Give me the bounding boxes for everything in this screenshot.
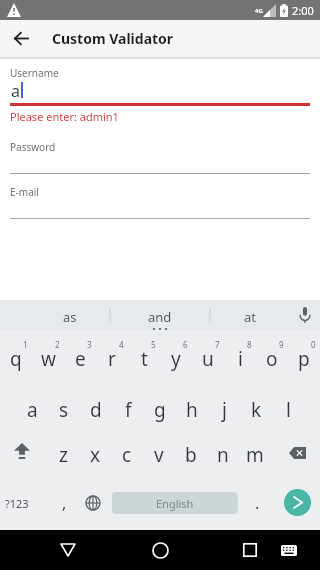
staticText: q xyxy=(10,346,22,372)
button[interactable]: f xyxy=(112,393,144,427)
button[interactable]: x xyxy=(79,438,111,472)
button[interactable] xyxy=(284,489,311,516)
staticText: Please enter: admin1 xyxy=(10,109,119,124)
button[interactable]: r xyxy=(96,342,128,376)
button[interactable]: d xyxy=(80,393,112,427)
staticText: a xyxy=(27,397,38,423)
staticText: e xyxy=(75,346,86,372)
button[interactable]: v xyxy=(143,438,175,472)
staticText: s xyxy=(59,397,69,423)
staticText: 0 xyxy=(311,339,316,350)
staticText: Custom Validator xyxy=(52,29,174,48)
button[interactable]: h xyxy=(176,393,208,427)
staticText: g xyxy=(154,397,166,423)
button[interactable]: k xyxy=(240,393,272,427)
button[interactable]: c xyxy=(111,438,143,472)
button[interactable] xyxy=(276,537,302,563)
button[interactable]: s xyxy=(48,393,80,427)
button[interactable] xyxy=(145,535,175,565)
staticText: x xyxy=(90,442,101,468)
staticText: 2 xyxy=(55,339,60,350)
staticText: and xyxy=(148,308,172,326)
button[interactable]: as xyxy=(30,308,110,326)
staticText: j xyxy=(222,397,227,423)
button[interactable]: a xyxy=(16,393,48,427)
button[interactable]: i xyxy=(224,342,256,376)
staticText: t xyxy=(141,346,148,372)
staticText: n xyxy=(217,442,229,468)
button[interactable]: u xyxy=(192,342,224,376)
staticText: . xyxy=(255,492,260,514)
button[interactable]: b xyxy=(175,438,207,472)
staticText: i xyxy=(238,346,243,372)
button[interactable] xyxy=(2,433,42,467)
button[interactable]: English xyxy=(112,492,238,514)
button[interactable] xyxy=(53,535,83,565)
staticText: 5 xyxy=(151,339,156,350)
button[interactable] xyxy=(79,486,107,520)
button[interactable]: m xyxy=(239,438,271,472)
staticText: as xyxy=(63,308,77,326)
button[interactable] xyxy=(235,535,265,565)
staticText: a xyxy=(11,80,20,100)
staticText: Username xyxy=(10,66,59,80)
staticText: k xyxy=(251,397,262,423)
button[interactable]: p xyxy=(288,342,320,376)
button[interactable]: w xyxy=(32,342,64,376)
button[interactable]: . xyxy=(241,486,273,520)
staticText: c xyxy=(122,442,132,468)
button[interactable]: t xyxy=(128,342,160,376)
button[interactable]: y xyxy=(160,342,192,376)
staticText: w xyxy=(41,346,56,372)
staticText: at xyxy=(244,308,256,326)
button[interactable]: q xyxy=(0,342,32,376)
staticText: 3 xyxy=(87,339,92,350)
staticText: 9 xyxy=(279,339,284,350)
staticText: r xyxy=(108,346,116,372)
button[interactable]: e xyxy=(64,342,96,376)
button[interactable]: , xyxy=(48,486,80,520)
staticText: m xyxy=(246,442,264,468)
staticText: o xyxy=(266,346,278,372)
button[interactable] xyxy=(3,20,40,57)
staticText: z xyxy=(59,442,68,468)
button[interactable]: and xyxy=(120,308,200,326)
staticText: 2:00 xyxy=(292,3,314,18)
staticText: p xyxy=(298,346,310,372)
staticText: y xyxy=(171,346,181,372)
staticText: 4G xyxy=(255,7,263,15)
button[interactable] xyxy=(277,436,317,470)
staticText: Password xyxy=(10,140,56,154)
staticText: 7 xyxy=(215,339,220,350)
staticText: f xyxy=(125,397,132,423)
staticText: ?123 xyxy=(5,496,29,511)
button[interactable]: at xyxy=(210,308,290,326)
button[interactable]: j xyxy=(208,393,240,427)
button[interactable]: z xyxy=(47,438,79,472)
staticText: English xyxy=(156,496,194,511)
button[interactable]: g xyxy=(144,393,176,427)
staticText: b xyxy=(185,442,197,468)
staticText: h xyxy=(186,397,198,423)
staticText: v xyxy=(154,442,164,468)
button[interactable]: l xyxy=(272,393,304,427)
staticText: 8 xyxy=(247,339,252,350)
staticText: 6 xyxy=(183,339,188,350)
staticText: 4 xyxy=(119,339,124,350)
staticText: d xyxy=(90,397,102,423)
staticText: l xyxy=(286,397,291,423)
staticText: u xyxy=(202,346,214,372)
staticText: 1 xyxy=(23,339,28,350)
staticText: , xyxy=(62,492,67,514)
staticText: E-mail xyxy=(10,185,39,199)
button[interactable]: o xyxy=(256,342,288,376)
button[interactable]: n xyxy=(207,438,239,472)
